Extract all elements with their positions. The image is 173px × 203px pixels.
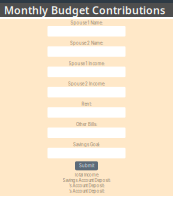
staticText: Savings Goal:: [73, 142, 100, 147]
staticText: Spouse 2 Name:: [70, 41, 103, 46]
staticText: Spouse 1 Name:: [70, 20, 102, 26]
staticText: Spouse 2 Income:: [68, 81, 105, 86]
staticText: Spouse 1 Income:: [68, 61, 104, 66]
button[interactable]: Submit: [75, 161, 98, 170]
staticText: Savings Account Deposit:: [62, 178, 110, 183]
staticText: 's Account Deposit:: [68, 189, 104, 194]
staticText: Submit: [79, 163, 94, 168]
staticText: Rent:: [81, 102, 91, 107]
staticText: Total Income:: [74, 172, 99, 178]
staticText: Other Bills:: [76, 122, 97, 127]
staticText: Monthly Budget Contributions: [4, 3, 165, 17]
staticText: 's Account Deposit:: [68, 183, 104, 188]
